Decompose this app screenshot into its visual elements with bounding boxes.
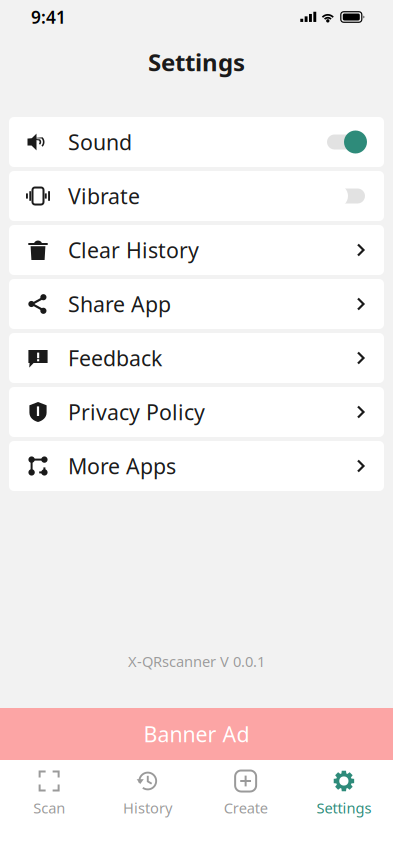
staticText: Feedback <box>68 344 162 372</box>
staticText: Privacy Policy <box>68 398 205 426</box>
staticText: More Apps <box>68 452 176 480</box>
button[interactable]: Settings <box>295 760 393 851</box>
button[interactable]: History <box>98 760 196 851</box>
button[interactable]: Feedback <box>9 333 384 383</box>
staticText: X-QRscanner V 0.0.1 <box>128 651 265 671</box>
staticText: Clear History <box>68 236 199 264</box>
staticText: Banner Ad <box>143 720 249 748</box>
button[interactable]: More Apps <box>9 441 384 491</box>
button[interactable]: Sound <box>9 117 384 167</box>
button[interactable]: Create <box>196 760 295 851</box>
staticText: Share App <box>68 290 171 318</box>
button[interactable]: Share App <box>9 279 384 329</box>
button[interactable]: Clear History <box>9 225 384 275</box>
staticText: Settings <box>148 46 245 78</box>
staticText: Settings <box>316 798 371 817</box>
staticText: Create <box>224 798 268 817</box>
button[interactable]: Vibrate <box>9 171 384 221</box>
staticText: History <box>123 798 172 817</box>
staticText: Vibrate <box>68 182 140 210</box>
staticText: Sound <box>68 128 132 156</box>
staticText: 9:41 <box>31 5 66 28</box>
staticText: Scan <box>33 798 65 817</box>
button[interactable]: Privacy Policy <box>9 387 384 437</box>
button[interactable]: Scan <box>0 760 98 851</box>
